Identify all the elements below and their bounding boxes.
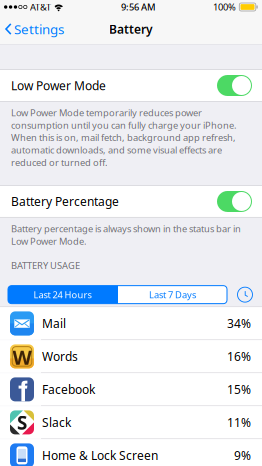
button[interactable]: S bbox=[0, 406, 262, 439]
button[interactable]: Low Power Mode bbox=[0, 70, 262, 101]
button[interactable]: Battery Percentage bbox=[0, 186, 262, 217]
staticText: 100% bbox=[213, 1, 236, 13]
button[interactable]: Time since last full charge bbox=[236, 286, 254, 304]
button[interactable]: Facebook bbox=[0, 373, 262, 406]
button[interactable]: Home & Lock Screen bbox=[0, 439, 262, 466]
staticText: 9:56 AM bbox=[121, 1, 156, 13]
staticText: Home & Lock Screen bbox=[42, 447, 158, 463]
button[interactable]: W bbox=[0, 340, 262, 373]
staticText: Mail bbox=[42, 315, 66, 331]
button[interactable]: Last 24 Hours bbox=[8, 286, 117, 304]
staticText: Settings bbox=[14, 20, 64, 38]
button[interactable]: Last 7 Days bbox=[118, 286, 227, 304]
staticText: AT&T bbox=[30, 1, 51, 13]
staticText: Battery Percentage bbox=[11, 193, 119, 209]
staticText: W bbox=[12, 344, 31, 370]
staticText: 16% bbox=[227, 348, 251, 364]
staticText: 11% bbox=[227, 414, 251, 430]
staticText: 34% bbox=[227, 315, 251, 331]
button[interactable]: Settings bbox=[0, 15, 72, 43]
button[interactable]: Mail bbox=[0, 307, 262, 340]
staticText: Low Power Mode temporarily reduces power… bbox=[11, 106, 237, 168]
staticText: 15% bbox=[227, 381, 251, 397]
staticText: S bbox=[17, 410, 27, 435]
staticText: Slack bbox=[42, 414, 71, 430]
staticText: Words bbox=[42, 348, 78, 364]
staticText: Battery percentage is always shown in th… bbox=[11, 222, 241, 247]
staticText: Facebook bbox=[42, 381, 95, 397]
staticText: Last 24 Hours bbox=[33, 288, 91, 301]
staticText: Battery bbox=[109, 21, 153, 37]
staticText: Last 7 Days bbox=[149, 288, 196, 301]
staticText: Low Power Mode bbox=[11, 77, 106, 93]
staticText: 9% bbox=[234, 447, 251, 463]
staticText: BATTERY USAGE bbox=[11, 259, 80, 272]
